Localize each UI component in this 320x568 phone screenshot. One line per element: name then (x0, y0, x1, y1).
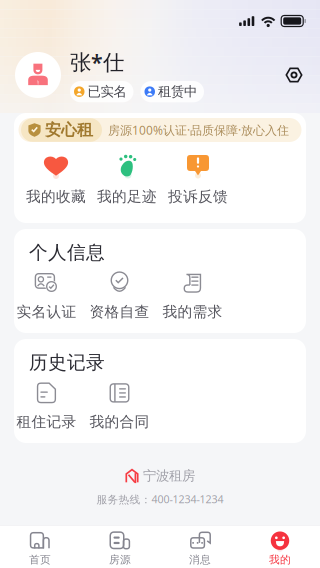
button[interactable]: 我的合同 (83, 377, 156, 435)
button[interactable]: 消息 (160, 529, 240, 567)
staticText: 宁波租房 (143, 468, 195, 484)
staticText: 房源 (109, 553, 131, 566)
button[interactable]: 我的需求 (156, 267, 229, 325)
staticText: 房源100%认证·品质保障·放心入住 (108, 122, 289, 138)
button[interactable]: 首页 (0, 529, 80, 567)
staticText: 服务热线：400-1234-1234 (96, 492, 223, 506)
staticText: 我的 (269, 553, 291, 566)
button[interactable]: 租住记录 (10, 377, 83, 435)
staticText: 我的足迹 (97, 187, 157, 205)
staticText: 投诉反馈 (168, 187, 228, 205)
staticText: 历史记录 (29, 351, 105, 374)
staticText: 租赁中 (158, 83, 197, 100)
staticText: 安心租 (45, 120, 93, 140)
staticText: 租住记录 (16, 413, 76, 431)
staticText: 张*仕 (70, 48, 124, 76)
staticText: 我的需求 (162, 303, 222, 321)
button[interactable]: 我的足迹 (91, 149, 162, 207)
staticText: 首页 (29, 553, 51, 566)
staticText: 已实名 (87, 83, 126, 100)
staticText: 个人信息 (29, 241, 105, 264)
staticText: 消息 (189, 553, 211, 566)
button[interactable]: 实名认证 (10, 267, 83, 325)
staticText: 实名认证 (16, 303, 76, 321)
staticText: 我的合同 (89, 413, 149, 431)
button[interactable]: 设置 (281, 62, 307, 88)
button[interactable]: 房源 (80, 529, 160, 567)
button[interactable]: 资格自查 (83, 267, 156, 325)
staticText: 资格自查 (89, 303, 149, 321)
button[interactable]: 我的 (240, 529, 320, 567)
button[interactable]: 我的收藏 (20, 149, 91, 207)
button[interactable]: 投诉反馈 (162, 149, 233, 207)
staticText: 我的收藏 (26, 187, 86, 205)
